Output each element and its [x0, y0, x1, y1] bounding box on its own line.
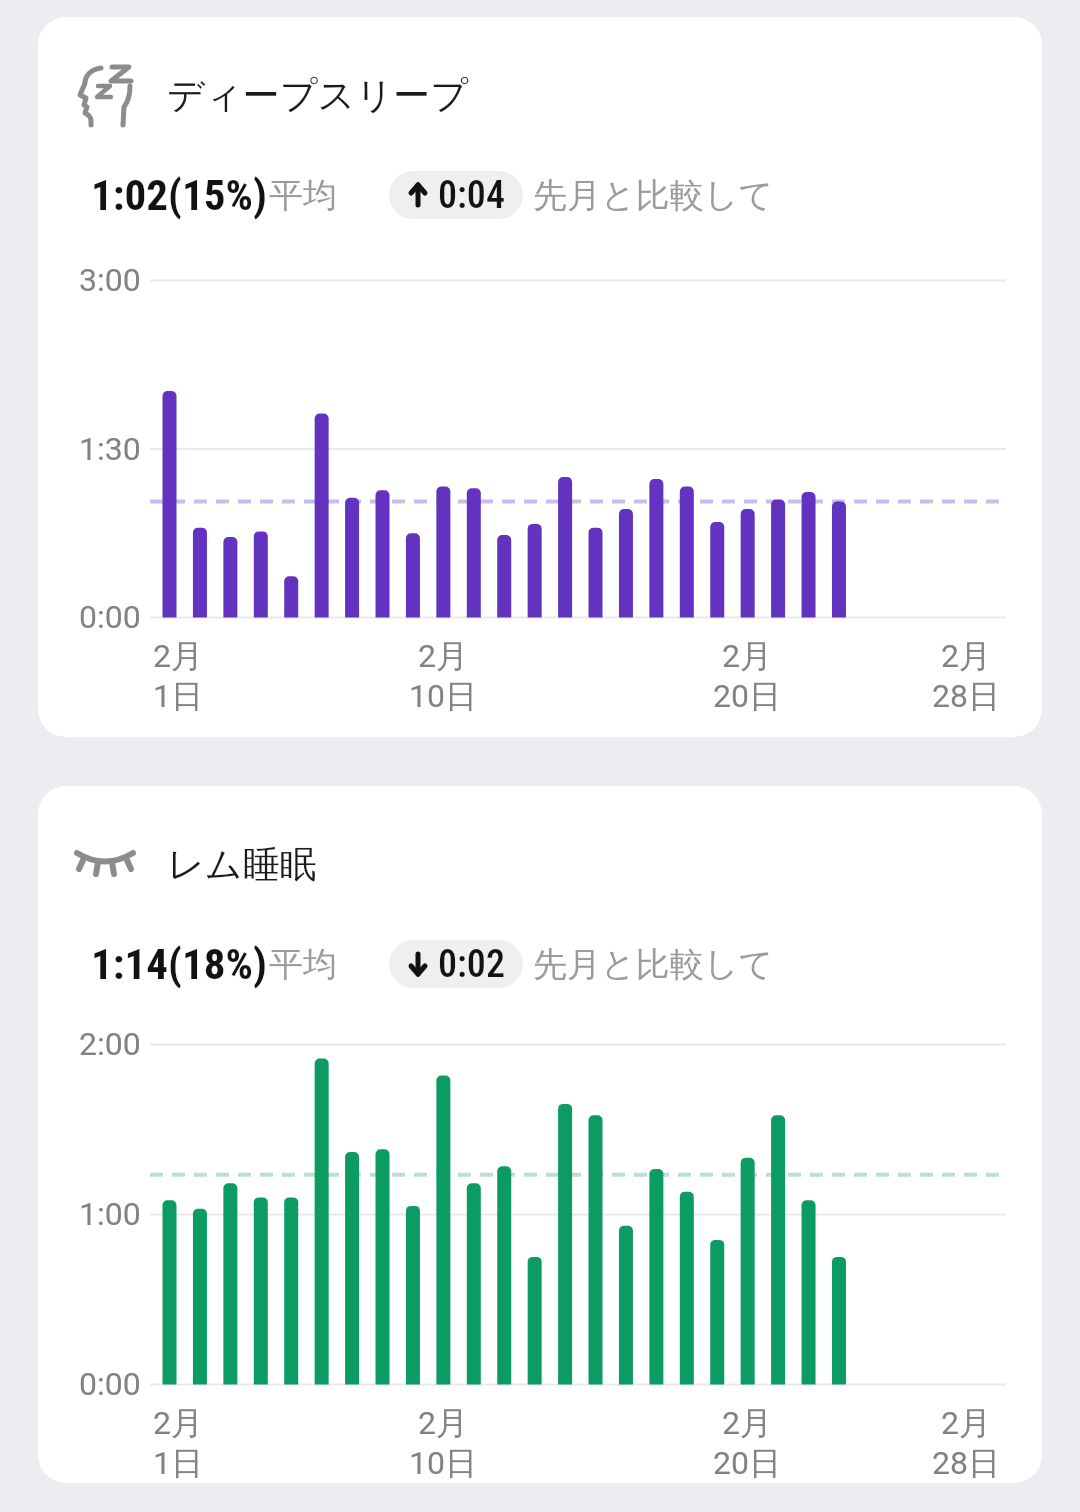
button[interactable]: ディープスリープ	[38, 17, 1042, 737]
staticText: 20日	[713, 1443, 781, 1483]
staticText: 0:02	[438, 942, 505, 987]
staticText: 2月	[153, 636, 203, 676]
staticText: 1:00	[79, 1195, 141, 1233]
button[interactable]: 0:02	[407, 940, 505, 988]
staticText: 2月	[941, 1403, 991, 1443]
staticText: 28日	[932, 676, 1000, 716]
staticText: ディープスリープ	[167, 72, 469, 119]
staticText: 0:04	[438, 173, 505, 218]
staticText: 2月	[722, 636, 772, 676]
button[interactable]: レム睡眠	[38, 786, 1042, 1483]
staticText: 2月	[941, 636, 991, 676]
staticText: 28日	[932, 1443, 1000, 1483]
staticText: 2月	[418, 636, 468, 676]
staticText: 2月	[418, 1403, 468, 1443]
staticText: 先月と比較して	[533, 943, 774, 986]
staticText: 0:00	[79, 1365, 141, 1403]
staticText: 3:00	[79, 261, 141, 299]
staticText: 先月と比較して	[533, 174, 774, 217]
button[interactable]: 0:04	[407, 171, 505, 219]
staticText: 10日	[409, 676, 477, 716]
staticText: 1日	[153, 1443, 203, 1483]
staticText: 10日	[409, 1443, 477, 1483]
staticText: 2:00	[79, 1025, 141, 1063]
staticText: 平均	[269, 943, 337, 986]
staticText: 2月	[722, 1403, 772, 1443]
staticText: 0:00	[79, 598, 141, 636]
staticText: 20日	[713, 676, 781, 716]
staticText: レム睡眠	[167, 841, 317, 888]
staticText: 平均	[269, 174, 337, 217]
staticText: 2月	[153, 1403, 203, 1443]
staticText: 1:02(15%)	[91, 170, 267, 220]
staticText: 1:14(18%)	[91, 939, 267, 989]
staticText: 1日	[153, 676, 203, 716]
staticText: 1:30	[79, 430, 141, 468]
